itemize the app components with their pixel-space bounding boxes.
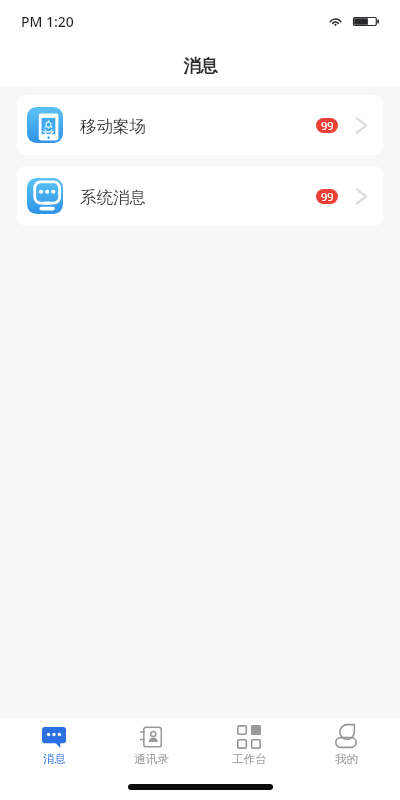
staticText: 消息: [183, 55, 218, 77]
staticText: 工作台: [232, 752, 267, 766]
button[interactable]: 消息: [11, 721, 97, 771]
staticText: PM 1:20: [21, 12, 74, 31]
staticText: 通讯录: [134, 752, 169, 766]
staticText: 99: [321, 118, 334, 133]
button[interactable]: 工作台: [206, 721, 292, 771]
button[interactable]: 移动案场: [17, 95, 383, 155]
button[interactable]: 通讯录: [108, 721, 194, 771]
button[interactable]: 系统消息: [17, 166, 383, 226]
staticText: 我的: [335, 752, 358, 766]
button[interactable]: 我的: [303, 721, 389, 771]
staticText: 移动案场: [80, 116, 146, 137]
staticText: 系统消息: [80, 187, 146, 208]
staticText: 消息: [43, 752, 66, 766]
staticText: 99: [321, 189, 334, 204]
